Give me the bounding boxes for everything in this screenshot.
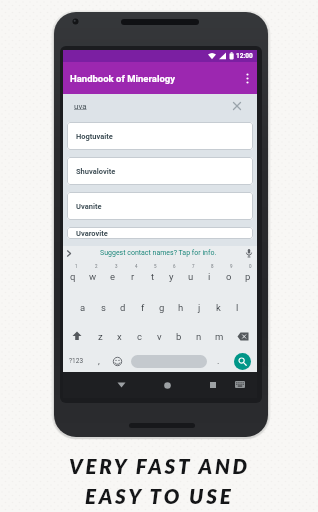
- button[interactable]: Uvarovite: [67, 227, 253, 239]
- button[interactable]: b: [169, 322, 189, 350]
- button[interactable]: j: [190, 292, 209, 322]
- button[interactable]: .: [210, 350, 227, 372]
- button[interactable]: v: [149, 322, 169, 350]
- button[interactable]: s: [93, 292, 113, 322]
- button[interactable]: t: [143, 260, 162, 292]
- staticText: e: [110, 271, 116, 282]
- staticText: n: [196, 331, 202, 342]
- staticText: 8: [211, 264, 214, 269]
- staticText: Uvanite: [76, 202, 102, 211]
- staticText: 12:00: [236, 52, 253, 60]
- staticText: Suggest contact names? Tap for info.: [100, 249, 217, 257]
- staticText: 6: [173, 264, 176, 269]
- staticText: 3: [115, 264, 118, 269]
- staticText: ?123: [69, 357, 84, 365]
- staticText: 2: [95, 264, 98, 269]
- button[interactable]: [229, 373, 251, 395]
- button[interactable]: [107, 350, 127, 372]
- button[interactable]: a: [73, 292, 93, 322]
- button[interactable]: q: [63, 260, 83, 292]
- staticText: Shuvalovite: [76, 167, 116, 176]
- button[interactable]: f: [133, 292, 152, 322]
- button[interactable]: o: [219, 260, 238, 292]
- button[interactable]: g: [152, 292, 171, 322]
- staticText: Uvarovite: [76, 229, 108, 238]
- staticText: 9: [230, 264, 233, 269]
- button[interactable]: x: [110, 322, 129, 350]
- staticText: m: [215, 331, 224, 342]
- staticText: s: [101, 302, 106, 313]
- staticText: f: [141, 302, 145, 313]
- staticText: x: [117, 331, 122, 342]
- button[interactable]: [109, 373, 133, 397]
- button[interactable]: i: [200, 260, 219, 292]
- staticText: o: [226, 271, 232, 282]
- staticText: l: [236, 302, 239, 313]
- button[interactable]: p: [238, 260, 257, 292]
- button[interactable]: ?123: [63, 350, 90, 372]
- staticText: w: [89, 271, 97, 282]
- staticText: 7: [192, 264, 195, 269]
- button[interactable]: [63, 322, 91, 350]
- staticText: r: [131, 271, 135, 282]
- staticText: i: [208, 271, 211, 282]
- staticText: h: [178, 302, 184, 313]
- button[interactable]: Shuvalovite: [67, 157, 253, 185]
- button[interactable]: y: [162, 260, 181, 292]
- staticText: q: [70, 271, 76, 282]
- button[interactable]: u: [181, 260, 200, 292]
- staticText: 5: [154, 264, 157, 269]
- staticText: b: [176, 331, 182, 342]
- button[interactable]: Hogtuvaite: [67, 122, 253, 150]
- staticText: c: [137, 331, 142, 342]
- staticText: v: [157, 331, 162, 342]
- button[interactable]: [227, 350, 257, 372]
- button[interactable]: l: [228, 292, 247, 322]
- button[interactable]: d: [113, 292, 133, 322]
- button[interactable]: h: [171, 292, 190, 322]
- button[interactable]: z: [91, 322, 110, 350]
- button[interactable]: [155, 373, 179, 397]
- button[interactable]: ,: [90, 350, 107, 372]
- staticText: g: [159, 302, 165, 313]
- staticText: 1: [75, 264, 78, 269]
- button[interactable]: [131, 350, 207, 372]
- staticText: t: [151, 271, 155, 282]
- staticText: .: [217, 356, 220, 367]
- staticText: k: [216, 302, 221, 313]
- staticText: p: [245, 271, 251, 282]
- staticText: EASY TO USE: [85, 484, 234, 509]
- staticText: ,: [98, 356, 100, 367]
- button[interactable]: n: [189, 322, 209, 350]
- staticText: 0: [249, 264, 252, 269]
- button[interactable]: k: [209, 292, 228, 322]
- staticText: Hogtuvaite: [76, 132, 113, 141]
- staticText: 4: [135, 264, 138, 269]
- button[interactable]: Suggest contact names? Tap for info.: [63, 246, 257, 260]
- staticText: a: [80, 302, 86, 313]
- button[interactable]: w: [83, 260, 103, 292]
- button[interactable]: r: [123, 260, 143, 292]
- button[interactable]: [229, 322, 257, 350]
- button[interactable]: Uvanite: [67, 192, 253, 220]
- staticText: Handbook of Mineralogy: [70, 73, 175, 84]
- staticText: u: [188, 271, 194, 282]
- staticText: j: [198, 302, 201, 313]
- button[interactable]: c: [129, 322, 149, 350]
- staticText: y: [169, 271, 174, 282]
- staticText: z: [98, 331, 103, 342]
- button[interactable]: [237, 68, 257, 88]
- button[interactable]: m: [209, 322, 229, 350]
- staticText: d: [120, 302, 126, 313]
- button[interactable]: [230, 99, 244, 113]
- staticText: uva: [74, 102, 87, 111]
- staticText: VERY FAST AND: [69, 454, 250, 479]
- button[interactable]: e: [103, 260, 123, 292]
- button[interactable]: [201, 373, 225, 397]
